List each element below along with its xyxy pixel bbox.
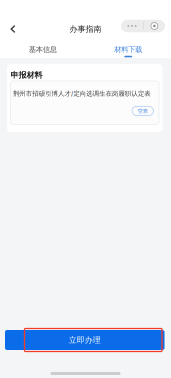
button[interactable]: Close mini program — [144, 20, 165, 32]
staticText: 基本信息 — [29, 45, 57, 54]
staticText: 办事指南 — [69, 24, 101, 34]
staticText: 申报材料 — [11, 70, 43, 80]
staticText: 立即办理 — [69, 335, 101, 345]
staticText: 材料下载 — [114, 45, 142, 54]
button[interactable]: 材料下载 — [85, 40, 171, 58]
button[interactable]: 空表 — [132, 106, 153, 115]
staticText: 空表 — [138, 107, 148, 114]
button[interactable]: More — [121, 20, 143, 32]
button[interactable]: Back — [5, 19, 21, 39]
button[interactable]: 基本信息 — [0, 40, 85, 58]
staticText: 荆州市招硕引博人才/定向选调生在岗履职认定表 — [13, 89, 150, 98]
button[interactable]: 立即办理 — [5, 330, 164, 350]
